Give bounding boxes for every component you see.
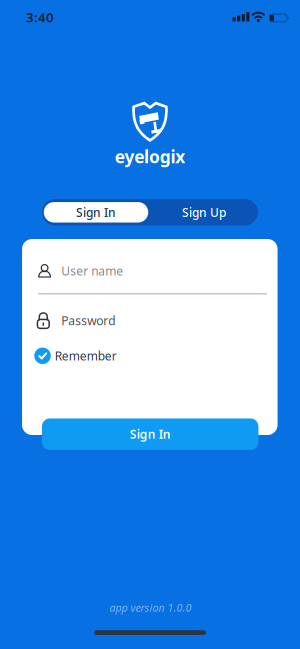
button[interactable]: Sign Up	[150, 199, 258, 226]
button[interactable]: Remember	[34, 344, 263, 368]
staticText: Sign Up	[182, 204, 226, 220]
button[interactable]: Sign In	[42, 418, 258, 450]
staticText: Sign In	[130, 426, 171, 442]
staticText: Remember	[55, 348, 117, 364]
staticText: User name	[61, 263, 123, 279]
staticText: Sign In	[76, 204, 116, 220]
staticText: 3:40	[26, 8, 54, 26]
staticText: app version 1.0.0	[109, 600, 191, 615]
button[interactable]: Sign In	[42, 199, 150, 226]
staticText: Password	[61, 313, 115, 328]
button[interactable]: Password	[36, 307, 265, 335]
button[interactable]: User name	[38, 257, 267, 285]
staticText: eyelogix	[115, 145, 185, 168]
